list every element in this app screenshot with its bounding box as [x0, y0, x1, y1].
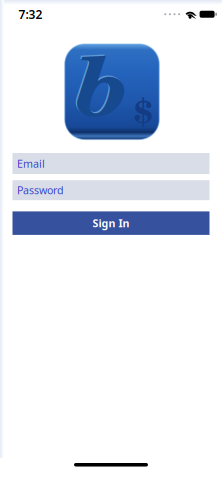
staticText: $ — [134, 85, 153, 135]
staticText: 7:32 — [18, 6, 42, 22]
staticText: b — [77, 21, 127, 146]
button[interactable]: Password — [12, 180, 209, 200]
button[interactable]: Email — [12, 153, 209, 174]
staticText: Password — [17, 183, 64, 197]
staticText: Sign In — [92, 216, 129, 230]
staticText: b — [76, 20, 126, 145]
button[interactable]: Sign In — [12, 211, 209, 235]
staticText: Email — [17, 156, 45, 171]
